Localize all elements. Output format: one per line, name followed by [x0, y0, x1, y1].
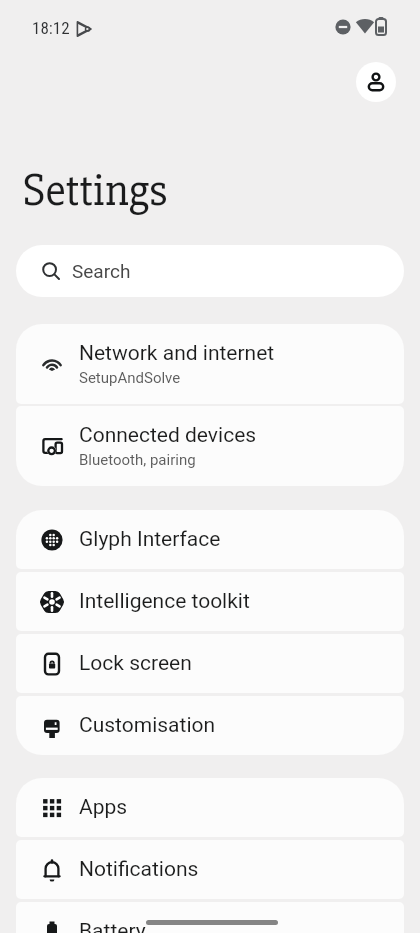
- staticText: Network and internet: [79, 341, 275, 366]
- button[interactable]: Network and internet: [16, 324, 404, 404]
- staticText: Bluetooth, pairing: [79, 451, 196, 469]
- button[interactable]: Lock screen: [16, 634, 404, 693]
- button[interactable]: Customisation: [16, 696, 404, 755]
- button[interactable]: Search: [16, 245, 404, 297]
- staticText: Settings: [23, 162, 168, 218]
- button[interactable]: Battery: [16, 902, 404, 933]
- staticText: SetupAndSolve: [79, 369, 181, 387]
- staticText: Intelligence toolkit: [79, 589, 250, 614]
- staticText: Apps: [79, 795, 128, 820]
- staticText: Connected devices: [79, 423, 257, 448]
- button[interactable]: Notifications: [16, 840, 404, 899]
- button[interactable]: Intelligence toolkit: [16, 572, 404, 631]
- button[interactable]: Glyph Interface: [16, 510, 404, 569]
- staticText: Notifications: [79, 857, 199, 882]
- button[interactable]: [356, 62, 396, 102]
- staticText: Lock screen: [79, 651, 192, 676]
- staticText: 18:12: [32, 18, 70, 38]
- button[interactable]: Connected devices: [16, 406, 404, 486]
- button[interactable]: Apps: [16, 778, 404, 837]
- staticText: Battery: [79, 919, 146, 933]
- staticText: Search: [72, 260, 131, 282]
- staticText: Glyph Interface: [79, 527, 221, 552]
- staticText: Customisation: [79, 713, 216, 738]
